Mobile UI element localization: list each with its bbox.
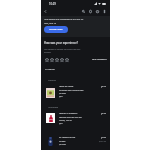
button[interactable]: Manage order (44, 26, 68, 33)
button[interactable]: Rate 1 stars (44, 57, 49, 62)
staticText: Manage order (49, 28, 63, 31)
button[interactable]: Rate 4 stars (59, 57, 64, 62)
button[interactable]: Search (80, 8, 87, 15)
staticText: 10:29 (49, 2, 56, 6)
staticText: Available (48, 79, 56, 82)
button[interactable]: Give feedback (92, 57, 107, 62)
staticText: Dr. Maiyoue Oil Milk Cookies $0.27/oz (59, 136, 76, 145)
button[interactable]: Back (42, 8, 49, 15)
button[interactable]: Rate 5 stars (64, 57, 69, 62)
staticText: $5.79 (101, 85, 106, 88)
staticText: Your feedback is valuable. We'd love to … (44, 48, 81, 53)
staticText: $7.98 (101, 136, 106, 139)
button[interactable]: More options (101, 8, 108, 15)
staticText: Your pickup was completed at 6:47 pm on … (44, 18, 84, 24)
button[interactable]: Rate 3 stars (54, 57, 59, 62)
staticText: HERSHEY'S Strawberry Flavored Syrup for … (59, 112, 82, 124)
button[interactable]: HERSHEY'S Strawberry Flavored Syrup for … (45, 112, 106, 126)
staticText: 12 items (45, 67, 55, 70)
staticText: $0.27 / oz (99, 140, 106, 142)
staticText: Give feedback (92, 58, 107, 61)
staticText: Nestle Toll House Chocolate Chip Cookie … (59, 85, 84, 97)
button[interactable]: Cart (94, 8, 101, 15)
button[interactable]: Dr. Maiyoue Oil Milk Cookies $0.27/oz (45, 136, 106, 150)
staticText: How was your experience? (44, 41, 78, 45)
button[interactable]: Nestle Toll House Chocolate Chip Cookie … (45, 85, 106, 99)
staticText: $3.48 (101, 112, 106, 115)
button[interactable]: Receipt (87, 8, 94, 15)
staticText: Unavailable (48, 106, 59, 109)
button[interactable]: Rate 2 stars (49, 57, 54, 62)
